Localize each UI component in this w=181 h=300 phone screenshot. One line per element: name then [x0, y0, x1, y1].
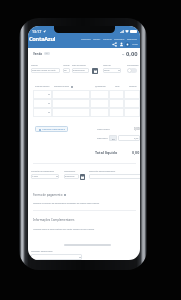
staticText: Pesquise o nome ou razão social: [32, 69, 59, 72]
staticText: Adicionar item/serviço: [42, 128, 65, 131]
staticText: 001: [64, 69, 68, 72]
staticText: Venda: [33, 52, 42, 56]
button[interactable]: [124, 108, 140, 117]
button[interactable]: Direto: [104, 68, 120, 73]
button[interactable]: Account: [119, 42, 124, 47]
button[interactable]: À vista: [32, 174, 58, 179]
button[interactable]: Consumidor toggle: [127, 68, 137, 73]
staticText: Adicione notas e informações que serão v…: [33, 228, 95, 231]
button[interactable]: Relatórios: [127, 38, 137, 41]
button[interactable]: [33, 90, 52, 99]
button[interactable]: Ajuda: [132, 43, 138, 46]
button[interactable]: Forma de pagamento: [33, 193, 63, 197]
button[interactable]: [90, 108, 109, 117]
staticText: Meio de negociação: [103, 64, 121, 67]
button[interactable]: Informações Complementares: [33, 218, 75, 222]
staticText: Condição de pagamento: [31, 170, 55, 173]
button[interactable]: Calendar: [80, 174, 85, 180]
button[interactable]: Cadastros: [81, 38, 91, 41]
button[interactable]: Notifications: [125, 42, 130, 47]
button[interactable]: [124, 99, 140, 108]
staticText: 123: [45, 52, 49, 55]
button[interactable]: [109, 99, 124, 108]
staticText: Quantidade: [95, 85, 106, 88]
staticText: 0,00: [134, 127, 140, 131]
button[interactable]: Share: [112, 42, 117, 47]
staticText: 0,00: [126, 50, 138, 57]
button[interactable]: [33, 108, 52, 117]
staticText: Detalhes do item: [54, 85, 70, 88]
staticText: À vista: [32, 175, 38, 178]
button[interactable]: [52, 90, 90, 99]
button[interactable]: [90, 90, 109, 99]
staticText: Desconto: [97, 136, 108, 139]
button[interactable]: [32, 254, 81, 260]
staticText: dd/mm/aaaa: [73, 69, 85, 72]
staticText: Vendedor Responsável: [31, 250, 53, 253]
button[interactable]: ContaAzul: [29, 35, 56, 42]
button[interactable]: [52, 108, 90, 117]
button[interactable]: Vendas: [93, 38, 101, 41]
staticText: Número: [63, 64, 70, 67]
button[interactable]: [33, 99, 52, 108]
staticText: 0,00: [132, 150, 140, 155]
button[interactable]: 001: [64, 68, 69, 73]
button[interactable]: [52, 99, 90, 108]
staticText: Subtotal: [129, 85, 137, 88]
button[interactable]: [124, 90, 140, 99]
staticText: Produto/Serviço: [35, 85, 50, 88]
staticText: Direto: [104, 69, 110, 72]
staticText: Valor bruto: [97, 127, 110, 130]
button[interactable]: [90, 99, 109, 108]
button[interactable]: Financeiro: [114, 38, 125, 41]
button[interactable]: Adicionar item/serviço: [35, 126, 68, 132]
staticText: Data da venda: [72, 64, 86, 67]
staticText: Informe as formas de pagamento recebidas…: [33, 202, 100, 205]
button[interactable]: dd/mm/aaaa: [73, 68, 88, 73]
staticText: dd/mm/aa: [65, 175, 75, 178]
staticText: 13:17: [32, 29, 42, 34]
button[interactable]: Calendar: [92, 68, 98, 74]
staticText: Total líquido: [95, 150, 118, 155]
staticText: Cliente: [31, 64, 38, 67]
button[interactable]: [109, 108, 124, 117]
staticText: Descrição deste pagamento: [89, 170, 116, 173]
button[interactable]: [109, 90, 124, 99]
button[interactable]: R$: [109, 135, 117, 141]
staticText: Valor: [115, 85, 120, 88]
staticText: Vencimento: [64, 170, 76, 173]
button[interactable]: Pesquise o nome ou razão social: [32, 68, 59, 73]
button[interactable]: 0,00: [119, 135, 139, 141]
button[interactable]: [90, 174, 140, 179]
staticText: 0,00: [134, 137, 139, 140]
staticText: Consumidor: [127, 64, 139, 67]
staticText: R$: [112, 137, 115, 140]
staticText: R$: [122, 53, 125, 56]
button[interactable]: dd/mm/aa: [65, 174, 78, 179]
button[interactable]: Compras: [103, 38, 112, 41]
